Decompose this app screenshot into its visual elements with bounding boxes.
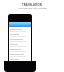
button[interactable] — [10, 28, 30, 33]
button[interactable] — [10, 53, 30, 58]
staticText: Translate from your language — [18, 7, 47, 10]
button[interactable] — [10, 33, 30, 38]
button[interactable] — [10, 38, 30, 43]
button[interactable] — [10, 58, 30, 63]
staticText: TRANSLATION — [22, 3, 42, 7]
button[interactable] — [10, 48, 30, 53]
button[interactable] — [10, 43, 30, 48]
